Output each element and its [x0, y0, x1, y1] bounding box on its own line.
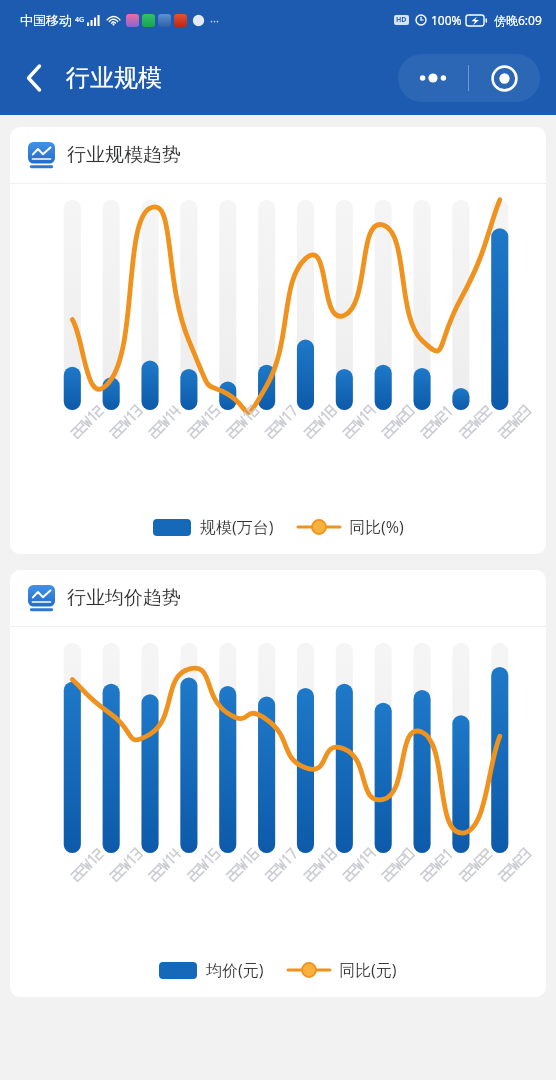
staticText: 100%	[431, 12, 462, 28]
staticText: 均价(元)	[206, 959, 264, 981]
button[interactable]: 更多	[398, 54, 468, 102]
button[interactable]: 返回	[10, 54, 58, 102]
staticText: 4G	[75, 15, 85, 25]
button[interactable]: 行业均价趋势	[10, 570, 546, 997]
staticText: 行业规模	[66, 63, 162, 93]
staticText: HD	[396, 15, 407, 25]
staticText: 行业均价趋势	[67, 586, 181, 610]
staticText: 同比(元)	[339, 959, 397, 981]
staticText: 规模(万台)	[200, 516, 274, 538]
button[interactable]: 行业规模趋势	[10, 127, 546, 554]
button[interactable]: 关闭	[469, 54, 540, 102]
staticText: ···	[210, 13, 219, 28]
staticText: 中国移动	[20, 12, 72, 28]
staticText: 同比(%)	[349, 516, 404, 538]
staticText: 傍晚6:09	[494, 12, 542, 28]
staticText: 行业规模趋势	[67, 143, 181, 167]
